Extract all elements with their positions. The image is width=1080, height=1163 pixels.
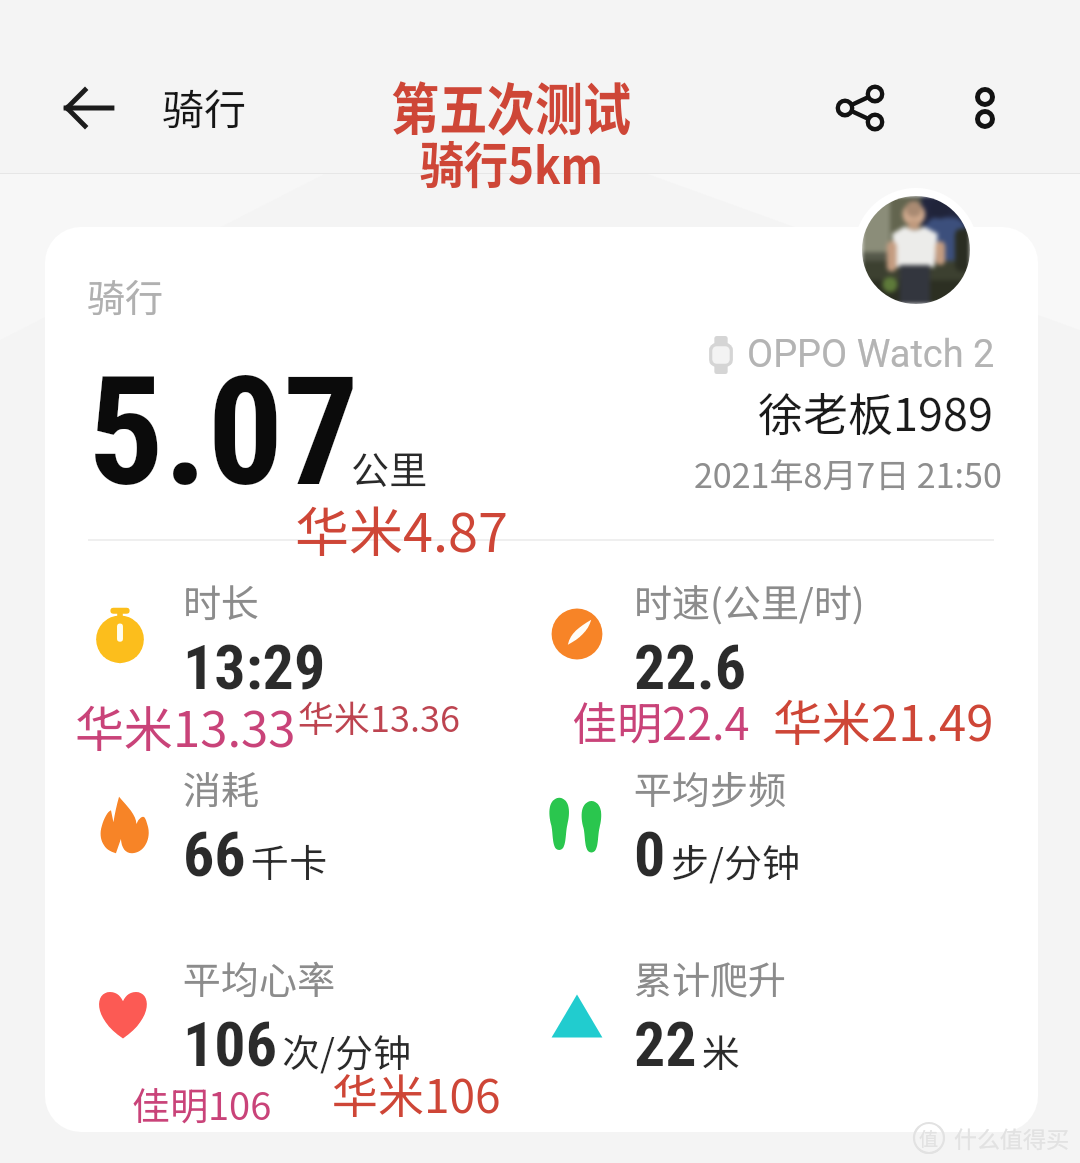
button[interactable]: Back xyxy=(53,72,125,144)
button[interactable]: 时长 xyxy=(80,558,566,718)
staticText: 2021年8月7日 21:50 xyxy=(694,449,1002,498)
staticText: 佳明22.4 xyxy=(572,688,750,753)
staticText: 华米106 xyxy=(332,1060,501,1127)
button[interactable]: 平均步频 xyxy=(536,745,1017,905)
staticText: 千卡 xyxy=(251,833,328,888)
staticText: 5.07 xyxy=(88,345,359,521)
staticText: 消耗 xyxy=(183,760,260,815)
staticText: 华米4.87 xyxy=(295,489,508,567)
button[interactable]: Profile photo xyxy=(862,196,970,304)
staticText: 骑行 xyxy=(87,268,164,323)
staticText: OPPO Watch 2 xyxy=(747,332,995,377)
staticText: 第五次测试 xyxy=(391,64,632,147)
staticText: 公里 xyxy=(351,440,428,495)
staticText: 时速(公里/时) xyxy=(634,573,865,628)
staticText: 0 xyxy=(634,818,666,891)
staticText: 米 xyxy=(702,1023,741,1078)
button[interactable]: 累计爬升 xyxy=(536,935,1017,1095)
staticText: 值 xyxy=(919,1124,939,1152)
staticText: 华米13.36 xyxy=(298,690,460,742)
staticText: 106 xyxy=(183,1008,277,1081)
button[interactable]: 时速(公里/时) xyxy=(536,558,1017,718)
staticText: 时长 xyxy=(183,573,260,628)
staticText: 什么值得买 xyxy=(954,1121,1069,1154)
staticText: 骑行 xyxy=(162,76,247,137)
staticText: 次/分钟 xyxy=(282,1023,411,1078)
staticText: 累计爬升 xyxy=(634,950,787,1005)
button[interactable]: Share xyxy=(825,73,895,143)
staticText: 华米13.33 xyxy=(75,690,296,761)
staticText: 平均步频 xyxy=(634,760,787,815)
button[interactable]: 平均心率 xyxy=(80,935,566,1095)
staticText: 66 xyxy=(183,818,246,891)
button[interactable]: More options xyxy=(950,73,1020,143)
button[interactable]: 消耗 xyxy=(80,745,566,905)
staticText: 22 xyxy=(634,1008,697,1081)
staticText: 13:29 xyxy=(183,631,326,704)
staticText: 徐老板1989 xyxy=(758,379,993,444)
staticText: 骑行5km xyxy=(420,125,603,199)
staticText: 佳明106 xyxy=(132,1076,272,1131)
staticText: 华米21.49 xyxy=(773,684,994,755)
staticText: 步/分钟 xyxy=(671,833,800,888)
staticText: 22.6 xyxy=(634,631,747,704)
staticText: 平均心率 xyxy=(183,950,336,1005)
